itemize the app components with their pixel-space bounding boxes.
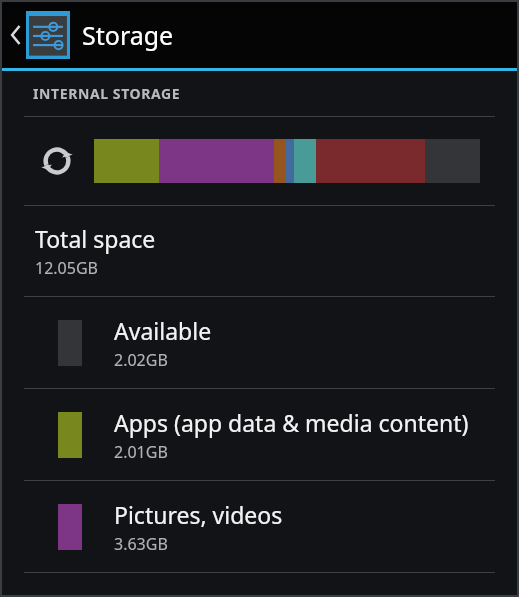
- staticText: 12.05GB: [35, 257, 98, 279]
- button[interactable]: Total space: [2, 206, 517, 296]
- button[interactable]: Navigate up: [2, 2, 188, 68]
- staticText: 2.01GB: [114, 441, 168, 463]
- button[interactable]: Available: [2, 297, 517, 388]
- button[interactable]: Refresh: [35, 139, 79, 183]
- staticText: Storage: [82, 18, 174, 52]
- button[interactable]: Apps (app data & media content): [2, 389, 517, 480]
- staticText: Total space: [35, 223, 156, 254]
- staticText: Pictures, videos: [114, 499, 283, 530]
- button[interactable]: Pictures, videos: [2, 481, 517, 572]
- staticText: INTERNAL STORAGE: [33, 84, 181, 103]
- staticText: 2.02GB: [114, 349, 168, 371]
- other: Navigate up: [8, 20, 24, 50]
- staticText: Available: [114, 315, 212, 346]
- staticText: Apps (app data & media content): [114, 407, 469, 438]
- staticText: 3.63GB: [114, 533, 168, 555]
